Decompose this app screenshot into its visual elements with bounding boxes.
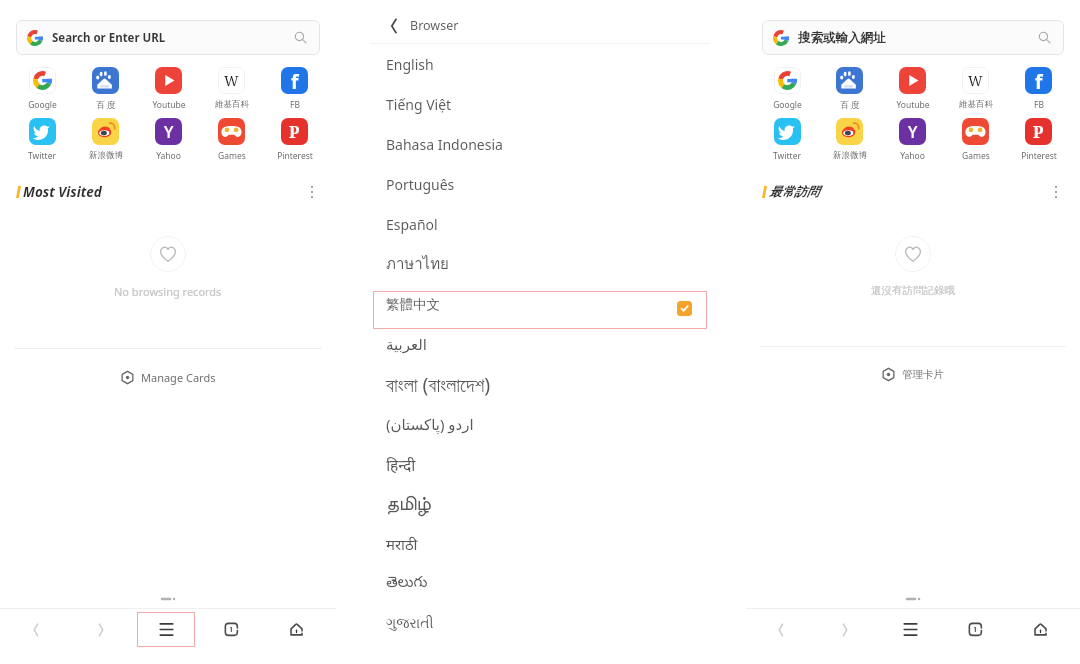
button[interactable]: العربية — [370, 324, 710, 364]
staticText: Tiếng Việt — [386, 95, 452, 114]
staticText: Most Visited — [23, 183, 102, 201]
staticText: 維基百科 — [959, 99, 993, 110]
staticText: Português — [386, 175, 455, 194]
button[interactable]: Games — [944, 118, 1007, 162]
staticText: Browser — [410, 17, 459, 34]
staticText: Pinterest — [1021, 150, 1057, 162]
button[interactable]: Google — [756, 67, 818, 111]
button[interactable]: Tabs — [946, 612, 1004, 647]
button[interactable]: मराठी — [370, 524, 710, 564]
button[interactable]: తెలుగు — [370, 564, 710, 604]
button[interactable]: English — [370, 44, 710, 84]
staticText: Youtube — [152, 99, 186, 111]
staticText: हिन्दी — [386, 454, 416, 475]
staticText: 搜索或輸入網址 — [798, 30, 1038, 46]
button[interactable]: More options — [1046, 182, 1066, 202]
button[interactable]: Twitter — [10, 118, 74, 162]
staticText: 百 度 — [840, 99, 860, 111]
staticText: Y — [164, 121, 174, 143]
staticText: P — [289, 121, 300, 143]
button[interactable]: Home — [267, 612, 325, 647]
staticText: Bahasa Indonesia — [386, 135, 503, 154]
button[interactable]: Back — [384, 16, 404, 36]
staticText: ગુજરાતી — [386, 617, 434, 631]
button[interactable]: Bahasa Indonesia — [370, 124, 710, 164]
button[interactable]: हिन्दी — [370, 444, 710, 484]
button[interactable]: Tiếng Việt — [370, 84, 710, 124]
staticText: Manage Cards — [141, 370, 216, 385]
staticText: f — [1035, 69, 1043, 94]
button[interactable]: বাংলা (বাংলাদেশ) — [370, 364, 710, 404]
staticText: Twitter — [28, 150, 56, 162]
button[interactable]: 管理卡片 — [878, 364, 948, 385]
staticText: 還沒有訪問記錄哦 — [871, 284, 955, 297]
staticText: Twitter — [773, 150, 801, 162]
staticText: f — [291, 69, 299, 94]
staticText: 管理卡片 — [902, 368, 944, 381]
staticText: Games — [962, 150, 990, 162]
button[interactable]: Manage Cards — [117, 366, 220, 389]
staticText: 百 度 — [96, 99, 116, 111]
button[interactable]: ภาษาไทย — [370, 244, 710, 284]
button[interactable]: ગુજરાતી — [370, 604, 710, 644]
button[interactable]: 搜索或輸入網址 — [762, 20, 1064, 55]
staticText: Games — [218, 150, 246, 162]
button[interactable]: 百 度 — [818, 67, 881, 111]
staticText: Y — [908, 121, 918, 143]
staticText: Español — [386, 215, 438, 234]
staticText: Yahoo — [156, 150, 181, 162]
staticText: ภาษาไทย — [386, 252, 449, 276]
button[interactable]: Twitter — [756, 118, 818, 162]
staticText: Youtube — [896, 99, 930, 111]
button[interactable]: Home — [1011, 612, 1069, 647]
staticText: 最常訪問 — [769, 184, 819, 200]
staticText: 新浪微博 — [89, 150, 123, 161]
staticText: اردو (پاکستان) — [386, 414, 474, 434]
staticText: W — [224, 71, 239, 90]
button[interactable]: More options — [302, 182, 322, 202]
button[interactable]: Menu — [137, 612, 195, 647]
button[interactable]: தமிழ் — [370, 484, 710, 524]
button[interactable]: 百 度 — [74, 67, 137, 111]
staticText: العربية — [386, 336, 427, 353]
button[interactable]: P — [1007, 118, 1070, 162]
button[interactable]: Games — [200, 118, 263, 162]
button[interactable]: Youtube — [881, 67, 944, 111]
staticText: 新浪微博 — [833, 150, 867, 161]
button[interactable]: f — [1007, 67, 1070, 111]
staticText: FB — [1034, 99, 1044, 111]
staticText: 維基百科 — [215, 99, 249, 110]
staticText: W — [968, 71, 983, 90]
button[interactable]: Youtube — [137, 67, 200, 111]
button[interactable]: P — [263, 118, 326, 162]
button[interactable]: 新浪微博 — [74, 118, 137, 161]
button[interactable]: f — [263, 67, 326, 111]
button[interactable]: Español — [370, 204, 710, 244]
button[interactable]: اردو (پاکستان) — [370, 404, 710, 444]
button[interactable]: Y — [881, 118, 944, 162]
staticText: Google — [28, 99, 57, 111]
staticText: Pinterest — [277, 150, 313, 162]
button[interactable]: Tabs — [202, 612, 260, 647]
button[interactable]: Back — [7, 612, 65, 647]
staticText: తెలుగు — [386, 574, 428, 594]
button[interactable]: Back — [752, 612, 810, 647]
button[interactable]: Português — [370, 164, 710, 204]
button[interactable]: Search or Enter URL — [16, 20, 320, 55]
button[interactable]: Forward — [816, 612, 874, 647]
staticText: Google — [773, 99, 802, 111]
staticText: P — [1033, 121, 1044, 143]
button[interactable]: 繁體中文 — [370, 284, 710, 324]
button[interactable]: Forward — [72, 612, 130, 647]
staticText: Search or Enter URL — [52, 30, 294, 46]
button[interactable]: Y — [137, 118, 200, 162]
button[interactable]: Google — [10, 67, 74, 111]
staticText: தமிழ் — [386, 494, 431, 514]
button[interactable]: Menu — [881, 612, 939, 647]
staticText: मराठी — [386, 534, 418, 554]
button[interactable]: W — [200, 67, 263, 110]
button[interactable]: W — [944, 67, 1007, 110]
button[interactable]: 新浪微博 — [818, 118, 881, 161]
staticText: English — [386, 55, 434, 74]
staticText: No browsing records — [114, 284, 222, 299]
